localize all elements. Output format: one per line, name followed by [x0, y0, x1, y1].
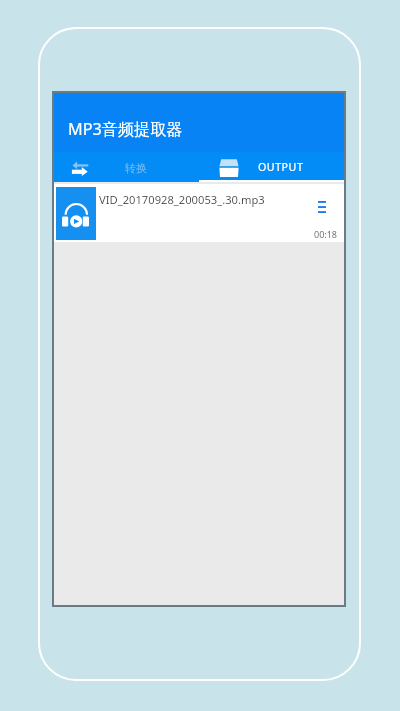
button[interactable]: More options — [309, 195, 335, 219]
staticText: OUTPUT — [258, 160, 304, 175]
staticText: MP3音频提取器 — [68, 118, 183, 140]
button[interactable]: 转换 — [52, 152, 199, 182]
staticText: VID_20170928_200053_.30.mp3 — [99, 192, 265, 207]
staticText: 00:18 — [314, 228, 338, 240]
button[interactable]: VID_20170928_200053_.30.mp3 — [52, 184, 346, 242]
staticText: 转换 — [125, 161, 147, 175]
button[interactable]: OUTPUT — [199, 152, 346, 182]
